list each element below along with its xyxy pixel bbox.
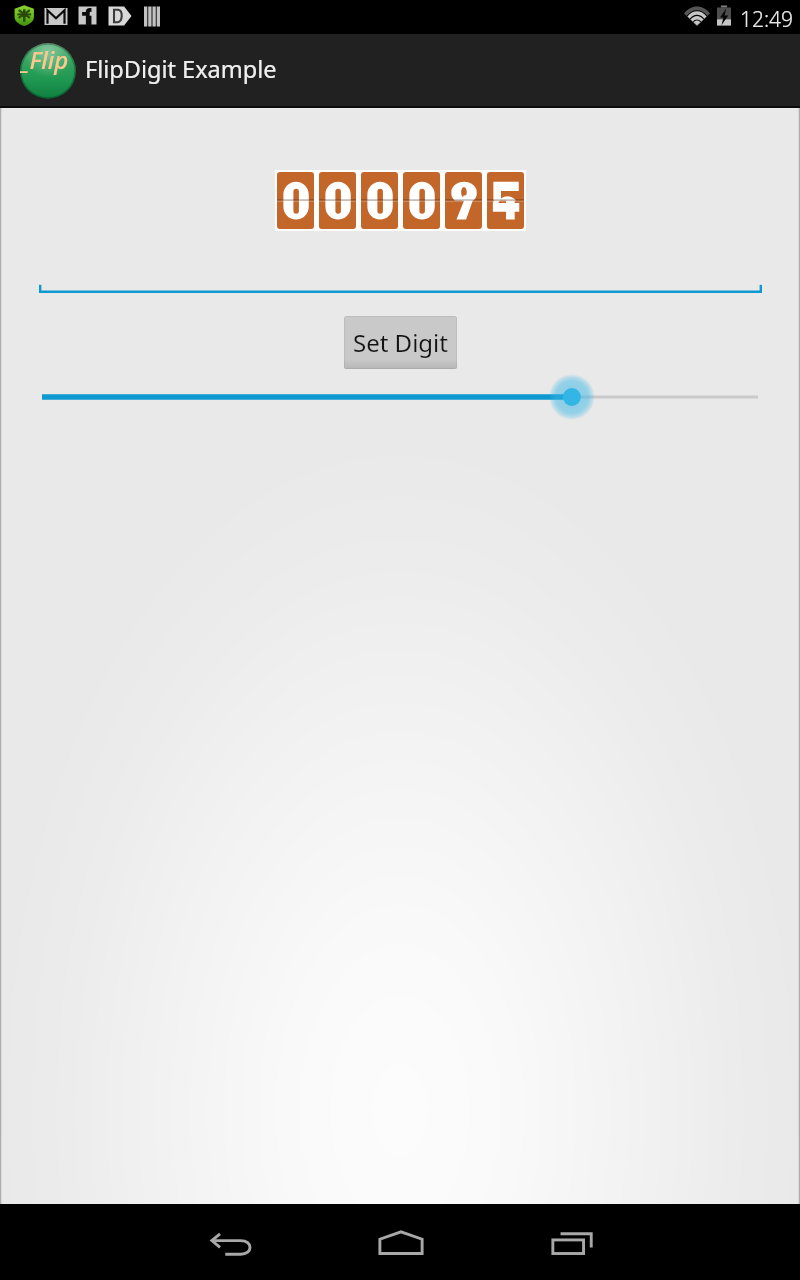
staticText: _Flip_	[20, 43, 76, 99]
button[interactable]: Home	[358, 1204, 443, 1280]
button[interactable]: Back	[189, 1204, 274, 1280]
button[interactable]: Recent apps	[530, 1204, 615, 1280]
button[interactable]: Set Digit	[344, 316, 457, 369]
button[interactable]	[39, 282, 762, 293]
staticText: Set Digit	[353, 326, 448, 359]
staticText: FlipDigit Example	[85, 53, 277, 85]
staticText: 12:49	[740, 5, 794, 34]
